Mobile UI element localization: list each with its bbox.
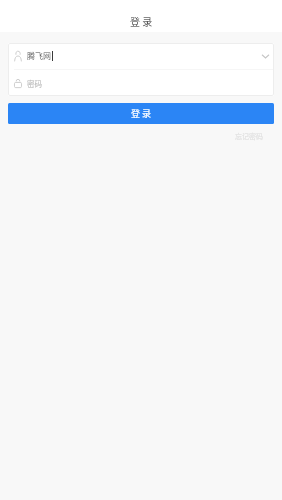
button[interactable]: 忘记密码 [235, 131, 263, 141]
staticText: 腾飞网 [27, 50, 51, 62]
staticText: 忘记密码 [235, 131, 263, 141]
staticText: 登 录 [131, 107, 152, 120]
button[interactable]: Show saved accounts [261, 52, 270, 61]
button[interactable]: 登 录 [8, 103, 274, 124]
staticText: 登 录 [130, 14, 153, 28]
button[interactable]: 腾飞网 [8, 43, 274, 69]
staticText: 密码 [27, 78, 42, 89]
button[interactable]: 密码 [8, 70, 274, 96]
